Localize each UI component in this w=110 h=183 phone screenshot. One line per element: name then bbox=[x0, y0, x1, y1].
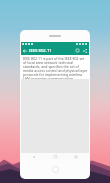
button[interactable]: Share bbox=[81, 46, 88, 55]
button[interactable]: Save article bbox=[74, 46, 81, 55]
button[interactable]: Back bbox=[21, 46, 29, 55]
button[interactable]: Home button bbox=[52, 166, 59, 173]
button[interactable]: Back bbox=[26, 153, 42, 160]
staticText: IEEE 802.11 is part of the IEEE 802 set … bbox=[23, 56, 88, 79]
staticText: IEEE 802.11 bbox=[29, 48, 52, 54]
button[interactable]: Home bbox=[47, 153, 63, 160]
button[interactable]: Recent apps bbox=[68, 153, 84, 160]
